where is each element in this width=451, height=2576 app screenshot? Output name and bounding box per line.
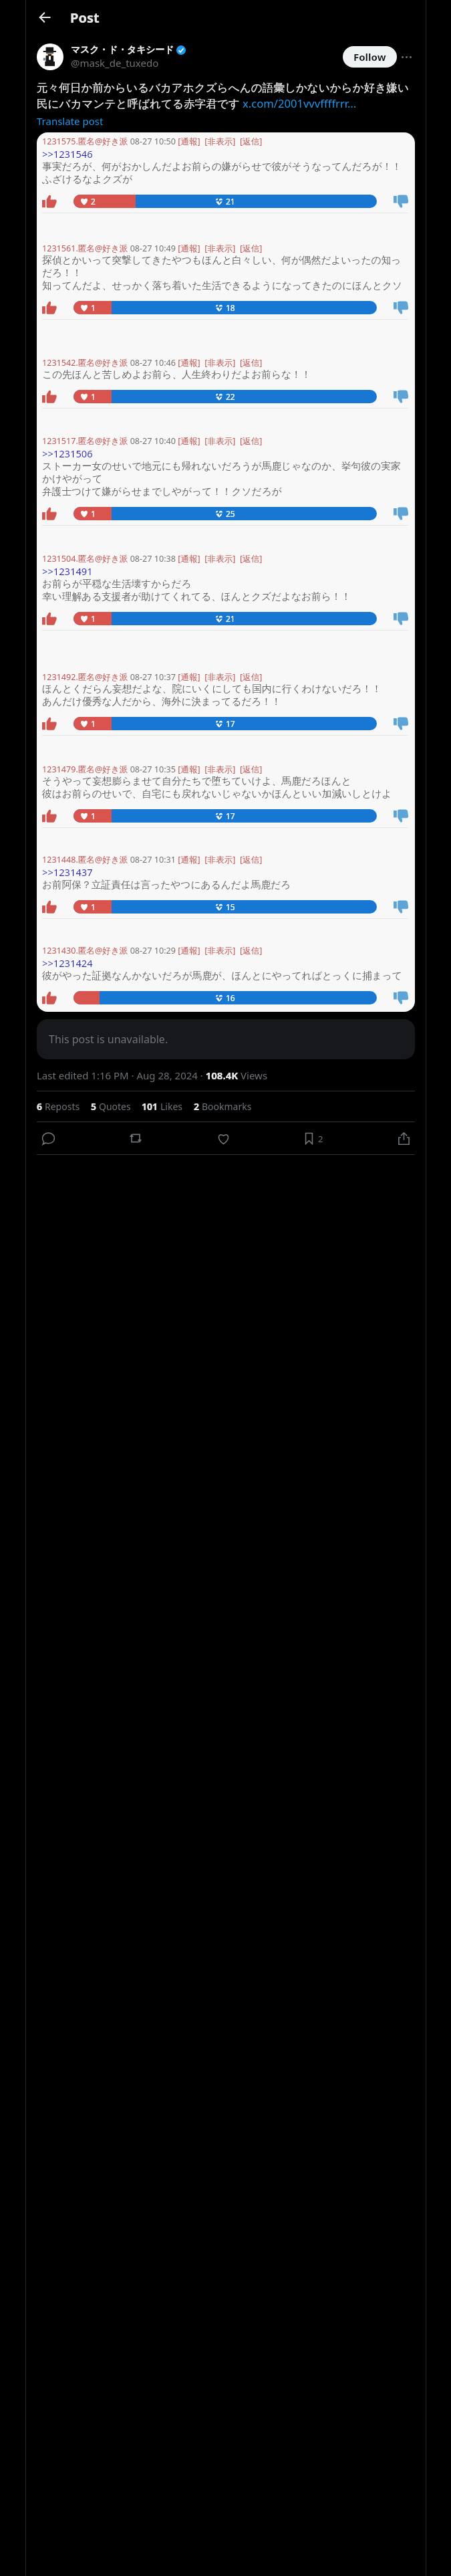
staticText: 17 bbox=[226, 718, 235, 729]
staticText: 6 bbox=[37, 1100, 43, 1113]
staticText: 1231492.匿名@好き派 08-27 10:37 [通報] [非表示] [返… bbox=[42, 671, 263, 683]
staticText: 幸い理解ある支援者が助けてくれてる、ほんとクズだよなお前ら！！ bbox=[42, 591, 351, 603]
staticText: 彼がやった証拠なんかないだろが馬鹿が、ほんとにやってればとっくに捕まってるだろ bbox=[42, 970, 408, 982]
staticText: 101 bbox=[142, 1100, 158, 1113]
staticText: Last edited 1:16 PM · Aug 28, 2024 · 108… bbox=[37, 1069, 268, 1082]
staticText: 1 bbox=[91, 718, 96, 729]
staticText: 17 bbox=[226, 811, 235, 821]
staticText: Translate post bbox=[37, 114, 104, 128]
button[interactable]: This post is unavailable. bbox=[37, 1019, 415, 1059]
staticText: 1 bbox=[91, 391, 96, 402]
staticText: 知ってんだよ、せっかく落ち着いた生活できるようになってきたのにほんとクソだよな bbox=[42, 280, 408, 292]
staticText: >>1231546 bbox=[42, 147, 93, 160]
staticText: 1231575.匿名@好き派 08-27 10:50 [通報] [非表示] [返… bbox=[42, 136, 263, 147]
staticText: だろ！！ bbox=[42, 267, 82, 280]
staticText: 事実だろが、何がおかしんだよお前らの嫌がらせで彼がそうなってんだろが！！ bbox=[42, 160, 402, 173]
staticText: This post is unavailable. bbox=[49, 1032, 168, 1047]
staticText: お前阿保？立証責任は言ったやつにあるんだよ馬鹿だろ bbox=[42, 879, 291, 891]
staticText: 1231517.匿名@好き派 08-27 10:40 [通報] [非表示] [返… bbox=[42, 435, 263, 447]
staticText: 1231561.匿名@好き派 08-27 10:49 [通報] [非表示] [返… bbox=[42, 243, 263, 254]
staticText: @mask_de_tuxedo bbox=[71, 56, 159, 70]
button[interactable]: Repost bbox=[124, 1127, 147, 1150]
staticText: そうやって妄想膨らませて自分たちで堕ちていけよ、馬鹿だろほんと bbox=[42, 775, 351, 788]
staticText: 1231479.匿名@好き派 08-27 10:35 [通報] [非表示] [返… bbox=[42, 764, 263, 775]
staticText: Follow bbox=[353, 50, 386, 64]
staticText: 1 bbox=[91, 302, 96, 313]
staticText: Quotes bbox=[99, 1100, 131, 1113]
staticText: Reposts bbox=[45, 1100, 80, 1113]
staticText: お前らが平穏な生活壊すからだろ bbox=[42, 578, 192, 591]
staticText: >>1231437 bbox=[42, 865, 93, 879]
staticText: 16 bbox=[226, 992, 235, 1003]
staticText: 1 bbox=[91, 613, 96, 624]
button[interactable] bbox=[37, 43, 63, 70]
button[interactable]: Back bbox=[32, 5, 57, 30]
staticText: 2 bbox=[91, 196, 96, 207]
button[interactable]: 2 bbox=[194, 1100, 252, 1113]
staticText: 弁護士つけて嫌がらせまでしやがって！！クソだろが bbox=[42, 486, 282, 498]
staticText: 21 bbox=[226, 613, 235, 624]
staticText: 1231430.匿名@好き派 08-27 10:29 [通報] [非表示] [返… bbox=[42, 945, 263, 956]
button[interactable]: Share bbox=[392, 1127, 415, 1150]
staticText: >>1231506 bbox=[42, 447, 93, 460]
staticText: >>1231491 bbox=[42, 564, 93, 578]
staticText: 1 bbox=[91, 901, 96, 912]
staticText: 1 bbox=[91, 508, 96, 519]
staticText: ストーカー女のせいで地元にも帰れないだろうが馬鹿じゃなのか、挙句彼の実家にも押し bbox=[42, 460, 408, 473]
staticText: 22 bbox=[226, 391, 235, 402]
staticText: マスク・ド・タキシード bbox=[71, 44, 174, 56]
staticText: Likes bbox=[160, 1100, 183, 1113]
staticText: >>1231424 bbox=[42, 956, 93, 970]
staticText: Post bbox=[70, 9, 100, 27]
button[interactable]: More options bbox=[397, 47, 416, 66]
staticText: 5 bbox=[91, 1100, 97, 1113]
staticText: 1231448.匿名@好き派 08-27 10:31 [通報] [非表示] [返… bbox=[42, 854, 263, 865]
staticText: 1231542.匿名@好き派 08-27 10:46 [通報] [非表示] [返… bbox=[42, 357, 263, 368]
staticText: 1231504.匿名@好き派 08-27 10:38 [通報] [非表示] [返… bbox=[42, 553, 263, 564]
staticText: 2 bbox=[318, 1133, 323, 1145]
staticText: 彼はお前らのせいで、自宅にも戻れないじゃないかほんといい加減いしとけよ bbox=[42, 788, 392, 800]
staticText: あんだけ優秀な人だから、海外に決まってるだろ！！ bbox=[42, 695, 281, 708]
staticText: 18 bbox=[226, 302, 235, 313]
button[interactable]: 5 bbox=[91, 1100, 131, 1113]
staticText: ふざけるなよクズが bbox=[42, 173, 133, 186]
staticText: 1 bbox=[91, 811, 96, 821]
staticText: 2 bbox=[194, 1100, 200, 1113]
button[interactable]: Translate post bbox=[37, 114, 104, 128]
button[interactable]: Follow bbox=[343, 46, 397, 68]
staticText: 25 bbox=[226, 508, 235, 519]
staticText: かけやがって bbox=[42, 473, 103, 486]
button[interactable]: Like bbox=[212, 1127, 235, 1150]
staticText: ほんとくだらん妄想だよな、院にいくにしても国内に行くわけないだろ！！ bbox=[42, 683, 382, 695]
button[interactable]: Bookmark bbox=[299, 1128, 327, 1149]
staticText: 元々何日か前からいるバカアホクズらへんの語彙しかないからか好き嫌い民にバカマンテ… bbox=[37, 81, 415, 111]
staticText: 21 bbox=[226, 196, 235, 207]
button[interactable]: 1231575.匿名@好き派 08-27 10:50 [通報] [非表示] [返… bbox=[37, 132, 415, 1012]
staticText: 15 bbox=[226, 901, 235, 912]
staticText: 探偵とかいって突撃してきたやつもほんと白々しい、何が偶然だよいったの知って来てる bbox=[42, 254, 408, 267]
staticText: この先ほんと苦しめよお前ら、人生終わりだよお前らな！！ bbox=[42, 368, 311, 381]
staticText: Bookmarks bbox=[202, 1100, 252, 1113]
button[interactable]: Reply bbox=[37, 1127, 59, 1150]
button[interactable]: 6 bbox=[37, 1100, 80, 1113]
button[interactable]: 101 bbox=[142, 1100, 183, 1113]
